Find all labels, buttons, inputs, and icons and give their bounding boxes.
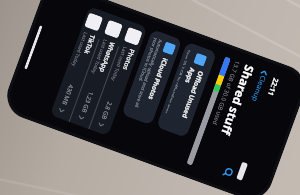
button[interactable]: Search xyxy=(220,164,236,181)
staticText: Last used Today xyxy=(70,31,89,67)
button[interactable]: Cleanup xyxy=(249,68,270,104)
staticText: Shared stuff xyxy=(218,63,258,137)
staticText: Cleanup xyxy=(249,74,268,104)
staticText: 13.7 GB of 30.0 GB used xyxy=(210,60,241,126)
staticText: Save 39.2 GB by offloading apps you've n… xyxy=(162,49,192,123)
staticText: Offload Unused Apps xyxy=(168,67,206,130)
button[interactable]: Photos xyxy=(89,20,148,136)
staticText: iCloud Photos xyxy=(146,57,170,101)
button[interactable]: iCloud Photos xyxy=(121,29,182,125)
staticText: 2.8 GB xyxy=(100,100,114,121)
staticText: Last used Today xyxy=(90,38,109,74)
staticText: 22:11 xyxy=(265,76,281,97)
button[interactable]: WhatsApp xyxy=(69,13,128,129)
staticText: TikTok xyxy=(82,33,97,55)
staticText: Photos xyxy=(121,48,137,72)
staticText: Automatically upload and store all your … xyxy=(127,37,164,113)
staticText: Last used Today xyxy=(109,45,128,82)
staticText: 1.23 GB xyxy=(80,90,95,114)
button[interactable]: TikTok xyxy=(50,6,108,122)
staticText: WhatsApp xyxy=(98,41,117,74)
button[interactable]: Offload Unused Apps xyxy=(156,42,217,138)
staticText: 430 MB xyxy=(60,83,75,107)
